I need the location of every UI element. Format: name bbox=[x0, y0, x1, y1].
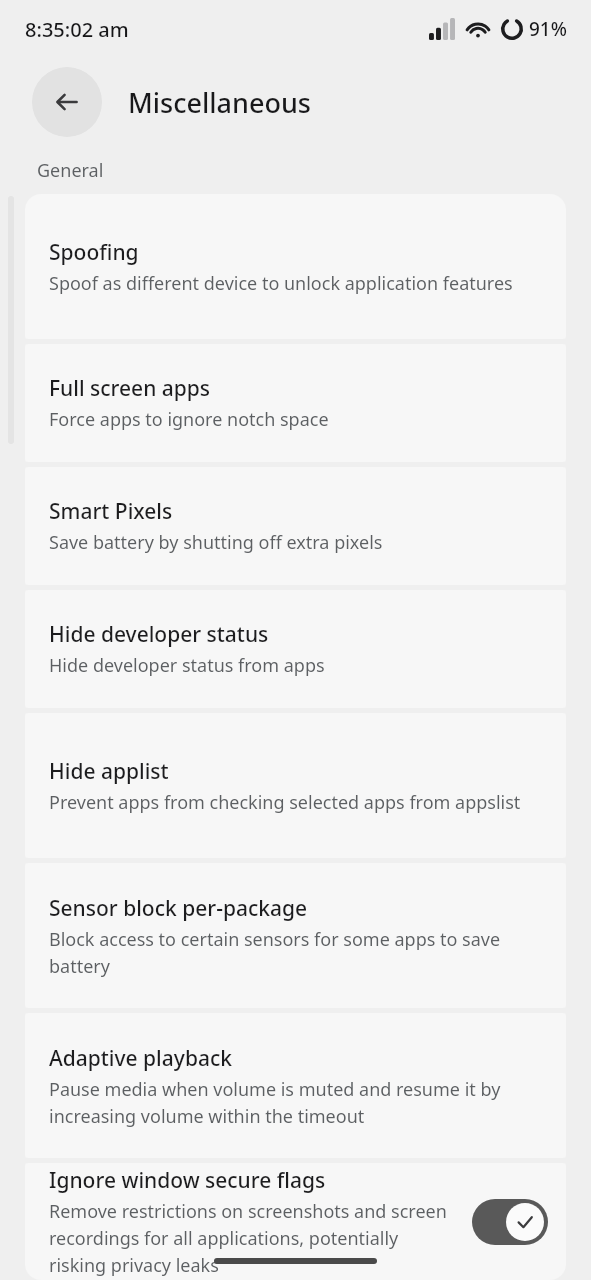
staticText: Miscellaneous bbox=[128, 84, 311, 121]
staticText: Save battery by shutting off extra pixel… bbox=[49, 530, 383, 555]
button[interactable]: Ignore window secure flags toggle bbox=[472, 1199, 548, 1245]
staticText: Ignore window secure flags bbox=[49, 1166, 326, 1195]
button[interactable]: Hide developer status bbox=[25, 590, 566, 708]
button[interactable]: Smart Pixels bbox=[25, 467, 566, 585]
staticText: Spoof as different device to unlock appl… bbox=[49, 271, 513, 296]
staticText: Force apps to ignore notch space bbox=[49, 407, 329, 432]
staticText: Smart Pixels bbox=[49, 497, 173, 526]
staticText: Hide applist bbox=[49, 757, 169, 786]
staticText: Adaptive playback bbox=[49, 1044, 232, 1073]
button[interactable]: Adaptive playback bbox=[25, 1013, 566, 1158]
button[interactable]: Ignore window secure flags bbox=[25, 1163, 566, 1280]
staticText: Hide developer status bbox=[49, 620, 269, 649]
button[interactable]: Hide applist bbox=[25, 713, 566, 858]
button[interactable]: Back bbox=[32, 67, 102, 137]
staticText: Hide developer status from apps bbox=[49, 653, 325, 678]
staticText: Prevent apps from checking selected apps… bbox=[49, 790, 521, 815]
staticText: Block access to certain sensors for some… bbox=[49, 927, 548, 978]
staticText: 91% bbox=[529, 16, 567, 42]
staticText: Pause media when volume is muted and res… bbox=[49, 1077, 548, 1128]
button[interactable]: Spoofing bbox=[25, 194, 566, 339]
button[interactable]: Full screen apps bbox=[25, 344, 566, 462]
staticText: Sensor block per-package bbox=[49, 894, 308, 923]
staticText: Full screen apps bbox=[49, 374, 211, 403]
staticText: Spoofing bbox=[49, 238, 139, 267]
button[interactable]: Sensor block per-package bbox=[25, 863, 566, 1008]
staticText: 8:35:02 am bbox=[25, 16, 129, 43]
staticText: General bbox=[37, 158, 104, 183]
staticText: Remove restrictions on screenshots and s… bbox=[49, 1199, 460, 1277]
